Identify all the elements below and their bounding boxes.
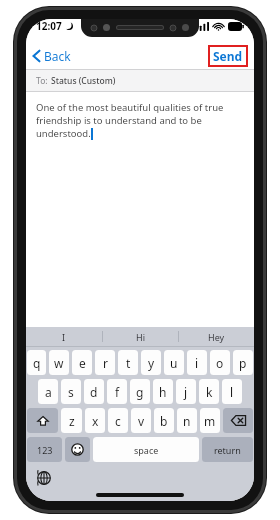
staticText: Status (Custom) (51, 75, 116, 87)
button[interactable]: n (177, 408, 197, 433)
staticText: One of the most beautiful qualities of t… (36, 101, 224, 114)
button[interactable]: s (61, 379, 81, 404)
staticText: o (216, 355, 224, 371)
staticText: z (69, 413, 75, 429)
staticText: c (115, 413, 121, 429)
staticText: n (183, 413, 191, 429)
button[interactable]: Emoji (65, 437, 90, 462)
button[interactable]: j (176, 379, 196, 404)
staticText: b (160, 413, 168, 429)
button[interactable]: g (130, 379, 150, 404)
button[interactable]: Backspace (223, 408, 253, 433)
staticText: f (115, 384, 120, 400)
staticText: m (204, 413, 216, 429)
button[interactable]: 123 (27, 437, 62, 462)
staticText: space (134, 444, 159, 456)
staticText: 12:07 (36, 19, 62, 33)
button[interactable]: l (222, 379, 242, 404)
button[interactable]: i (187, 350, 207, 375)
button[interactable]: x (85, 408, 105, 433)
button[interactable]: z (61, 408, 82, 433)
button[interactable]: y (141, 350, 161, 375)
staticText: return (214, 444, 241, 456)
staticText: l (230, 384, 234, 400)
button[interactable]: d (84, 379, 104, 404)
button[interactable]: Send (208, 45, 248, 67)
staticText: I (62, 331, 66, 343)
button[interactable]: a (38, 379, 58, 404)
staticText: Hey (208, 331, 225, 343)
button[interactable]: m (200, 408, 220, 433)
button[interactable]: Change keyboard language (36, 470, 51, 485)
staticText: k (206, 384, 213, 400)
button[interactable]: space (93, 437, 199, 462)
button[interactable]: k (199, 379, 219, 404)
button[interactable]: Hi (103, 327, 178, 346)
button[interactable]: w (49, 350, 69, 375)
staticText: w (54, 355, 64, 371)
staticText: a (45, 384, 52, 400)
button[interactable]: return (202, 437, 253, 462)
button[interactable]: e (72, 350, 92, 375)
button[interactable]: v (131, 408, 151, 433)
button[interactable]: b (154, 408, 174, 433)
button[interactable]: u (164, 350, 184, 375)
staticText: e (79, 355, 86, 371)
button[interactable]: I (26, 327, 102, 346)
staticText: y (148, 355, 155, 371)
button[interactable]: p (233, 350, 253, 375)
button[interactable]: To: (26, 70, 254, 91)
staticText: x (92, 413, 99, 429)
staticText: j (184, 384, 188, 400)
staticText: friendship is to understand and to be (36, 114, 202, 127)
staticText: p (239, 355, 247, 371)
staticText: 123 (37, 444, 53, 456)
button[interactable]: t (118, 350, 138, 375)
staticText: To: (36, 75, 48, 87)
button[interactable]: o (210, 350, 230, 375)
button[interactable]: Back (26, 44, 79, 68)
staticText: v (138, 413, 145, 429)
staticText: understood. (36, 127, 91, 140)
button[interactable]: Hey (179, 327, 254, 346)
staticText: Back (44, 48, 71, 64)
staticText: Hi (136, 331, 145, 343)
staticText: s (68, 384, 74, 400)
button[interactable]: f (107, 379, 127, 404)
staticText: h (159, 384, 167, 400)
staticText: r (103, 355, 108, 371)
staticText: Send (213, 48, 243, 64)
staticText: d (90, 384, 98, 400)
staticText: q (33, 355, 41, 371)
staticText: i (195, 355, 199, 371)
button[interactable]: q (27, 350, 46, 375)
button[interactable]: h (153, 379, 173, 404)
staticText: g (136, 384, 144, 400)
button[interactable]: Shift (27, 408, 58, 433)
staticText: t (126, 355, 131, 371)
button[interactable]: c (108, 408, 128, 433)
button[interactable]: r (95, 350, 115, 375)
staticText: u (170, 355, 178, 371)
